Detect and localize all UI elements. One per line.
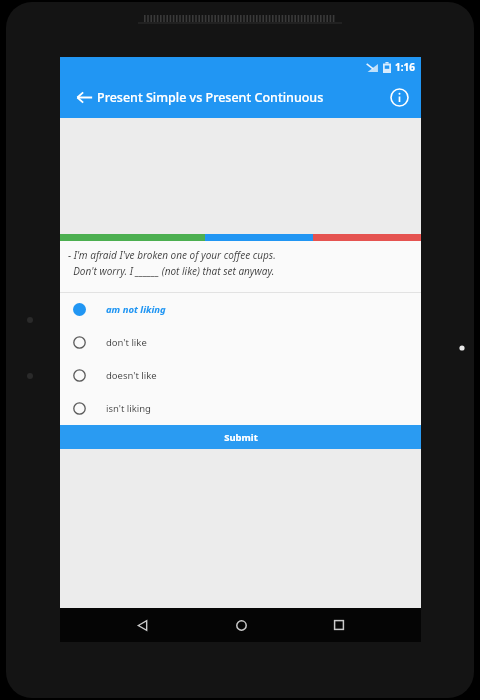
button[interactable]: Back [70, 83, 98, 111]
button[interactable]: Recent apps [322, 608, 356, 642]
staticText: doesn't like [106, 369, 157, 382]
button[interactable]: Submit [60, 425, 421, 449]
staticText: am not liking [106, 303, 166, 316]
button[interactable]: Info [385, 83, 413, 111]
staticText: Present Simple vs Present Continuous [97, 89, 324, 106]
staticText: don't like [106, 336, 147, 349]
button[interactable]: am not liking [60, 293, 421, 326]
staticText: isn't liking [106, 402, 151, 415]
button[interactable]: isn't liking [60, 392, 421, 425]
button[interactable]: Home [224, 608, 258, 642]
button[interactable]: doesn't like [60, 359, 421, 392]
button[interactable]: Back [125, 608, 159, 642]
button[interactable]: don't like [60, 326, 421, 359]
staticText: - I'm afraid I've broken one of your cof… [68, 248, 276, 262]
staticText: Don't worry. I ______ (not like) that se… [68, 264, 275, 278]
staticText: 1:16 [395, 60, 415, 74]
staticText: Submit [224, 431, 258, 444]
